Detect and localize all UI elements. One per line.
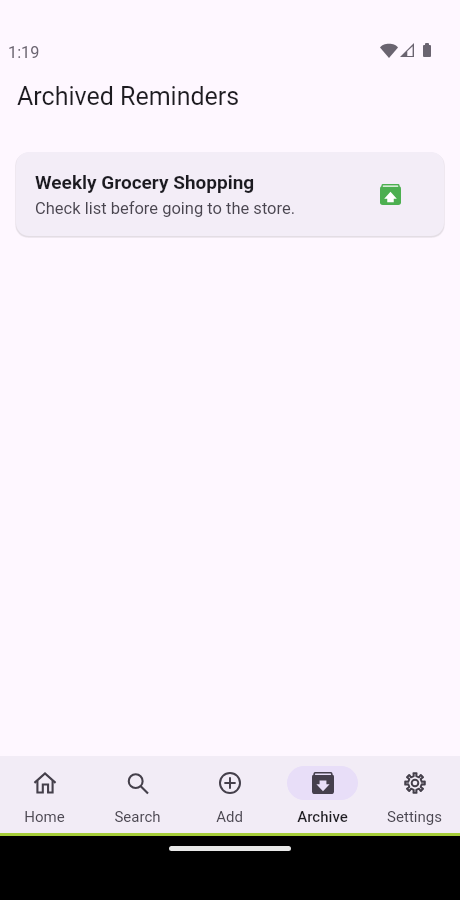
button[interactable]: Unarchive xyxy=(374,178,407,211)
button[interactable]: Archive xyxy=(276,756,369,833)
button[interactable]: Weekly Grocery Shopping xyxy=(16,152,444,236)
staticText: Home xyxy=(24,808,65,826)
staticText: 1:19 xyxy=(8,43,40,62)
staticText: Search xyxy=(114,808,161,826)
button[interactable]: Search xyxy=(91,756,184,833)
staticText: Archive xyxy=(297,808,348,826)
button[interactable]: Settings xyxy=(368,756,460,833)
staticText: Archived Reminders xyxy=(17,82,240,111)
staticText: Weekly Grocery Shopping xyxy=(35,171,255,193)
button[interactable]: Add xyxy=(183,756,276,833)
button[interactable]: Home xyxy=(0,756,91,833)
staticText: Settings xyxy=(387,808,442,826)
staticText: Add xyxy=(216,808,243,826)
staticText: Check list before going to the store. xyxy=(35,199,296,218)
